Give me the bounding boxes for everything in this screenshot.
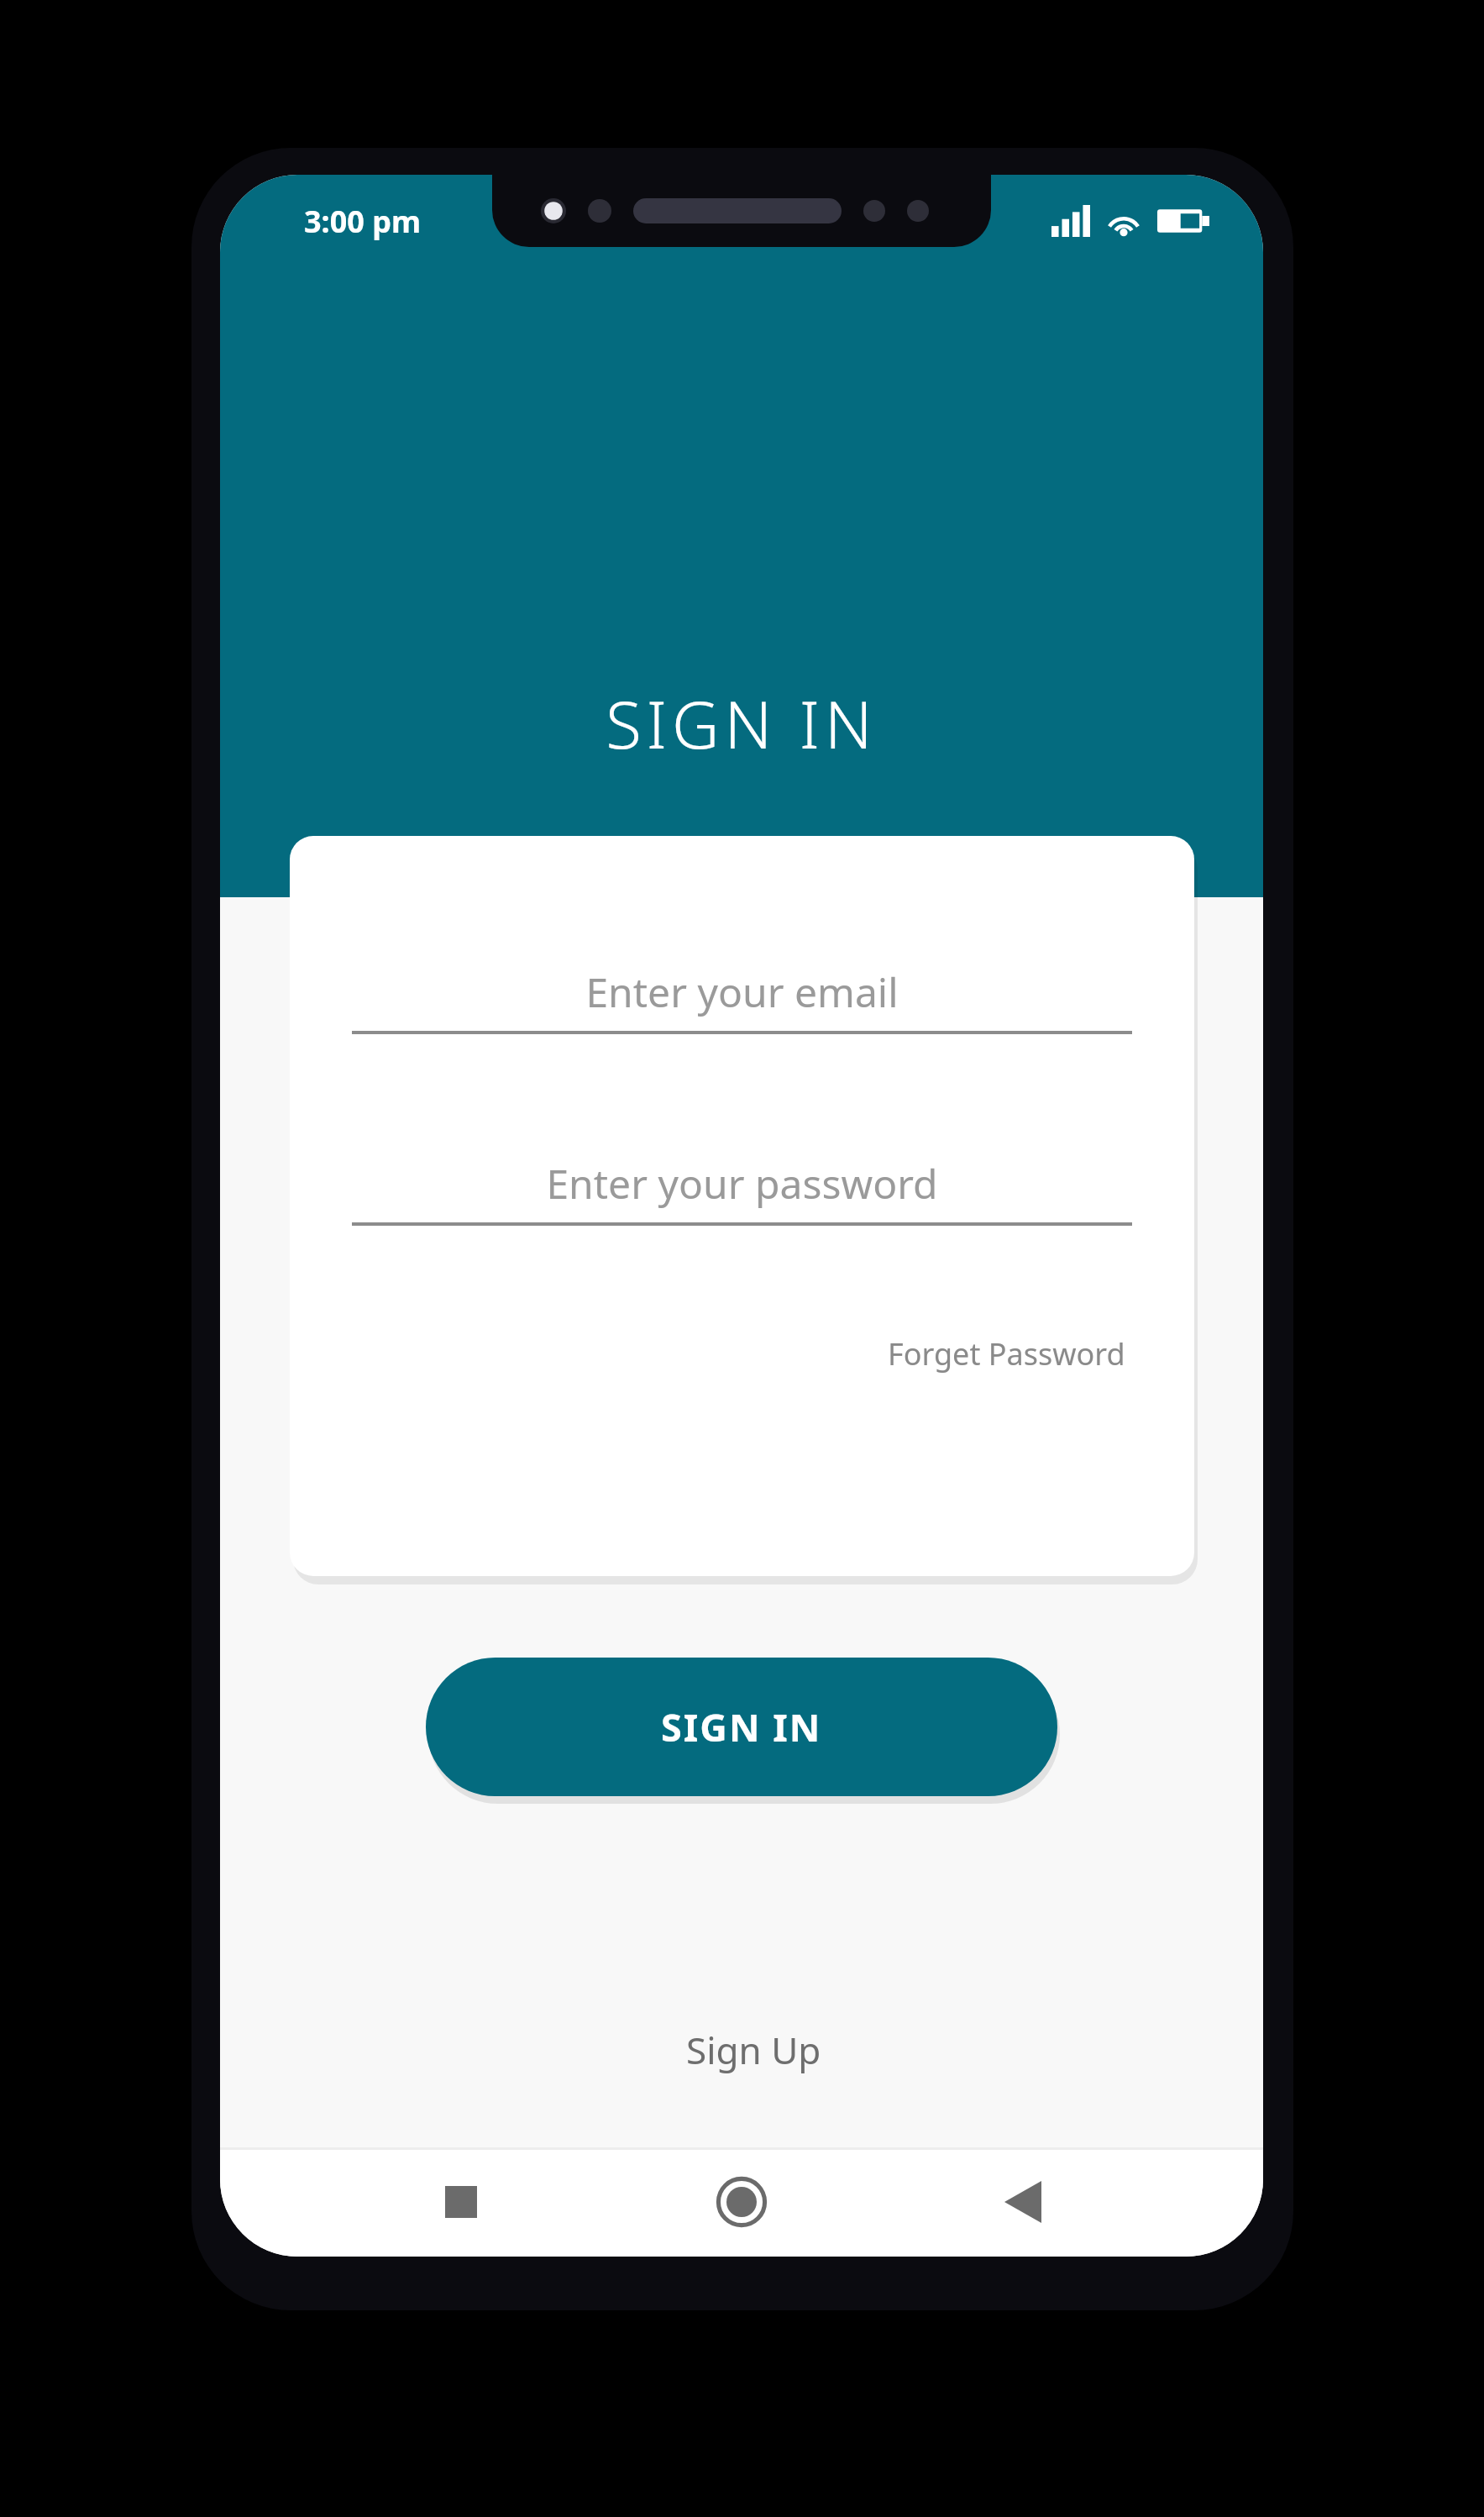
button[interactable]: SIGN IN	[426, 1658, 1057, 1796]
button[interactable]: Home	[701, 2162, 782, 2242]
staticText: SIGN IN	[606, 679, 878, 768]
staticText: Enter your password	[546, 1156, 938, 1211]
button[interactable]: Forget Password	[881, 1325, 1132, 1383]
staticText: Forget Password	[888, 1333, 1125, 1374]
staticText: 3:00 pm	[304, 201, 422, 242]
staticText: SIGN IN	[661, 1701, 822, 1752]
button[interactable]: Enter your email	[352, 960, 1132, 1034]
button[interactable]: Recent apps	[421, 2162, 501, 2242]
staticText: Enter your email	[585, 964, 899, 1019]
button[interactable]: Enter your password	[352, 1152, 1132, 1226]
button[interactable]: Back	[983, 2162, 1063, 2242]
staticText: Sign Up	[686, 2025, 821, 2075]
button[interactable]: Sign Up	[666, 2013, 842, 2087]
